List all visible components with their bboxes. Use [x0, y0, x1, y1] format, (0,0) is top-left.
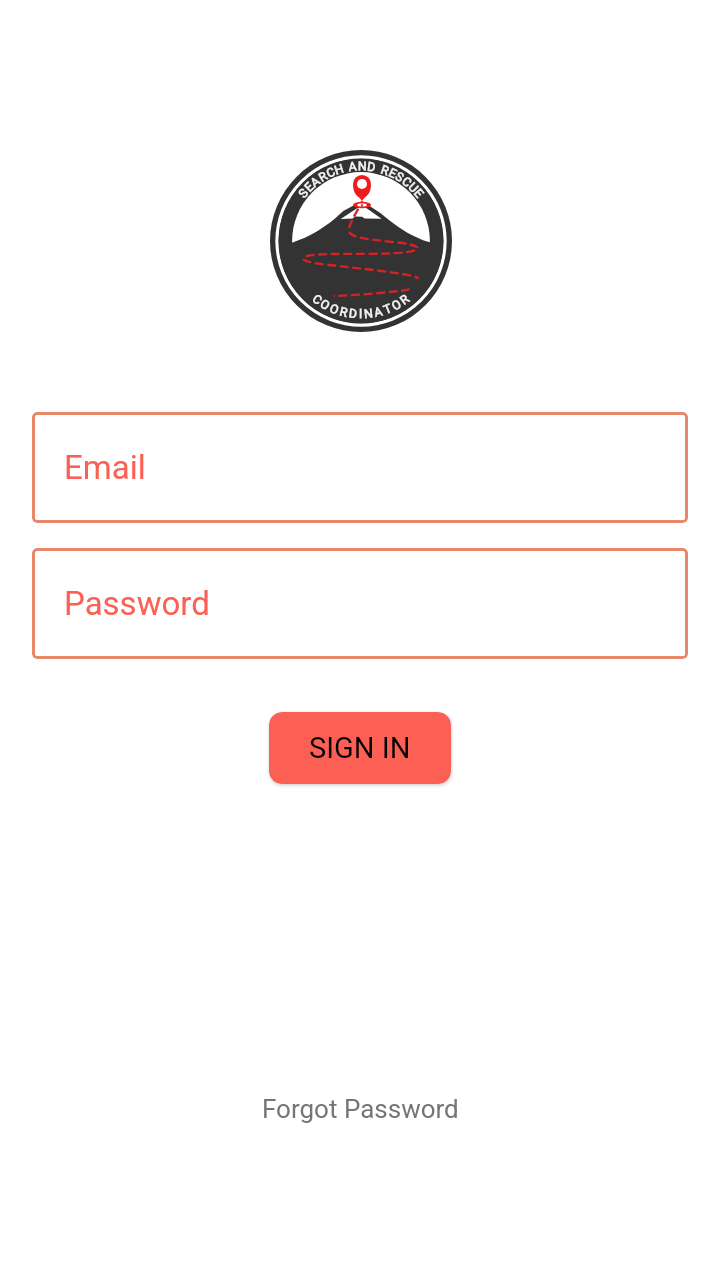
staticText: Password [64, 584, 210, 623]
button[interactable]: Email [32, 412, 688, 523]
button[interactable]: Password [32, 548, 688, 659]
other: Search and Rescue Coordinator logo [270, 150, 452, 332]
staticText: Forgot Password [262, 1094, 459, 1124]
button[interactable]: SIGN IN [269, 712, 451, 784]
staticText: SIGN IN [309, 731, 411, 765]
staticText: Email [64, 448, 146, 487]
button[interactable]: Forgot Password [0, 1085, 720, 1133]
